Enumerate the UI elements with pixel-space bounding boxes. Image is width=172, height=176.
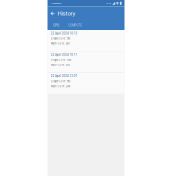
staticText: Single-Core: 950 bbox=[51, 80, 70, 83]
staticText: History bbox=[57, 10, 75, 17]
staticText: 22 April 2024 10:11 bbox=[51, 53, 78, 56]
staticText: Single-Core: 1000 bbox=[51, 58, 71, 61]
staticText: Single-Core: 950 bbox=[51, 37, 70, 40]
staticText: Multi-Core: 2677 bbox=[51, 42, 70, 45]
staticText: Geekbench bbox=[51, 2, 61, 5]
staticText: Multi-Core: 2700 bbox=[51, 85, 70, 88]
staticText: 22 April 2024 10:13 bbox=[51, 32, 78, 35]
button[interactable]: Back bbox=[47, 6, 57, 21]
button[interactable]: 22 April 2024 12:07 bbox=[47, 73, 124, 94]
button[interactable]: CPU bbox=[47, 22, 65, 30]
staticText: CPU bbox=[53, 24, 59, 27]
button[interactable]: 22 April 2024 10:13 bbox=[47, 30, 124, 51]
staticText: COMPUTE bbox=[68, 24, 82, 27]
staticText: 12:07 bbox=[106, 2, 111, 5]
staticText: 22 April 2024 12:07 bbox=[51, 74, 78, 78]
staticText: Multi-Core: 3737 bbox=[51, 63, 70, 66]
button[interactable]: 22 April 2024 10:11 bbox=[47, 51, 124, 72]
button[interactable]: COMPUTE bbox=[65, 22, 85, 30]
